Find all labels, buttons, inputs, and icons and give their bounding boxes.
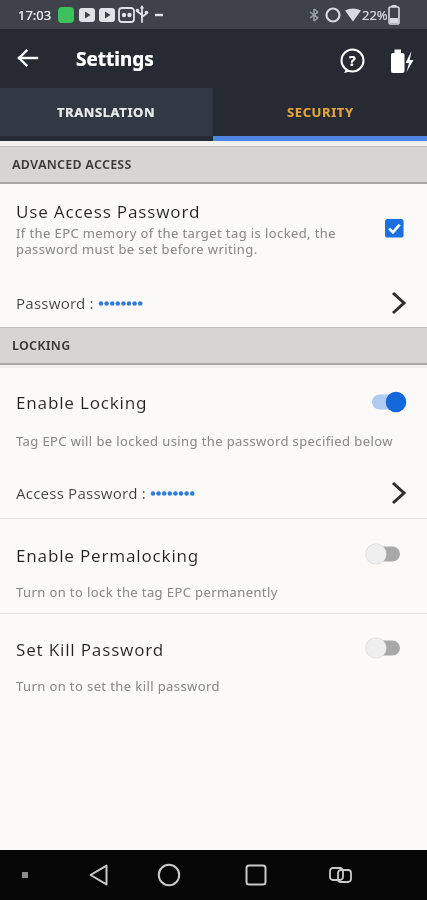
staticText: Set Kill Password bbox=[16, 638, 165, 661]
button[interactable] bbox=[356, 542, 404, 566]
button[interactable] bbox=[0, 368, 427, 453]
button[interactable] bbox=[356, 636, 404, 660]
button[interactable]: SECURITY bbox=[213, 88, 427, 136]
staticText: password must be set before writing. bbox=[16, 240, 258, 258]
button[interactable] bbox=[0, 272, 427, 327]
button[interactable] bbox=[0, 190, 427, 268]
staticText: Use Access Password bbox=[16, 200, 201, 223]
staticText: 17:03 bbox=[18, 6, 52, 24]
staticText: Turn on to lock the tag EPC permanently bbox=[16, 583, 278, 601]
button[interactable] bbox=[147, 853, 191, 897]
button[interactable]: ? bbox=[331, 39, 374, 82]
staticText: Enable Permalocking bbox=[16, 544, 200, 567]
staticText: SECURITY bbox=[287, 103, 354, 121]
button[interactable] bbox=[319, 853, 363, 897]
staticText: ADVANCED ACCESS bbox=[12, 156, 132, 173]
button[interactable] bbox=[386, 46, 418, 78]
button[interactable] bbox=[0, 460, 427, 518]
button[interactable] bbox=[78, 853, 122, 897]
button[interactable] bbox=[6, 36, 50, 80]
staticText: Password : bbox=[16, 293, 98, 313]
staticText: 22% bbox=[362, 6, 388, 24]
button[interactable]: TRANSLATION bbox=[0, 88, 213, 136]
staticText: Access Password : bbox=[16, 483, 150, 503]
staticText: Turn on to set the kill password bbox=[16, 677, 220, 695]
staticText: ? bbox=[349, 51, 356, 70]
staticText: Settings bbox=[76, 46, 154, 72]
staticText: LOCKING bbox=[12, 337, 71, 354]
button[interactable] bbox=[0, 614, 427, 708]
button[interactable] bbox=[0, 519, 427, 613]
staticText: Tag EPC will be locked using the passwor… bbox=[16, 432, 393, 450]
staticText: TRANSLATION bbox=[57, 103, 156, 121]
staticText: If the EPC memory of the target tag is l… bbox=[16, 224, 337, 242]
staticText: Enable Locking bbox=[16, 391, 148, 414]
button[interactable] bbox=[362, 390, 410, 414]
button[interactable] bbox=[234, 853, 278, 897]
